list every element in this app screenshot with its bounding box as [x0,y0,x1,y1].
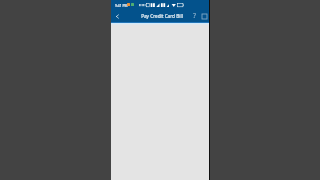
staticText: 9:41 PM [115,3,128,7]
button[interactable]: Navigate up [111,9,124,22]
button[interactable]: More options [199,11,209,21]
staticText: ? [193,11,197,21]
staticText: Pay Credit Card Bill [141,13,183,19]
button[interactable]: Help [190,11,200,21]
